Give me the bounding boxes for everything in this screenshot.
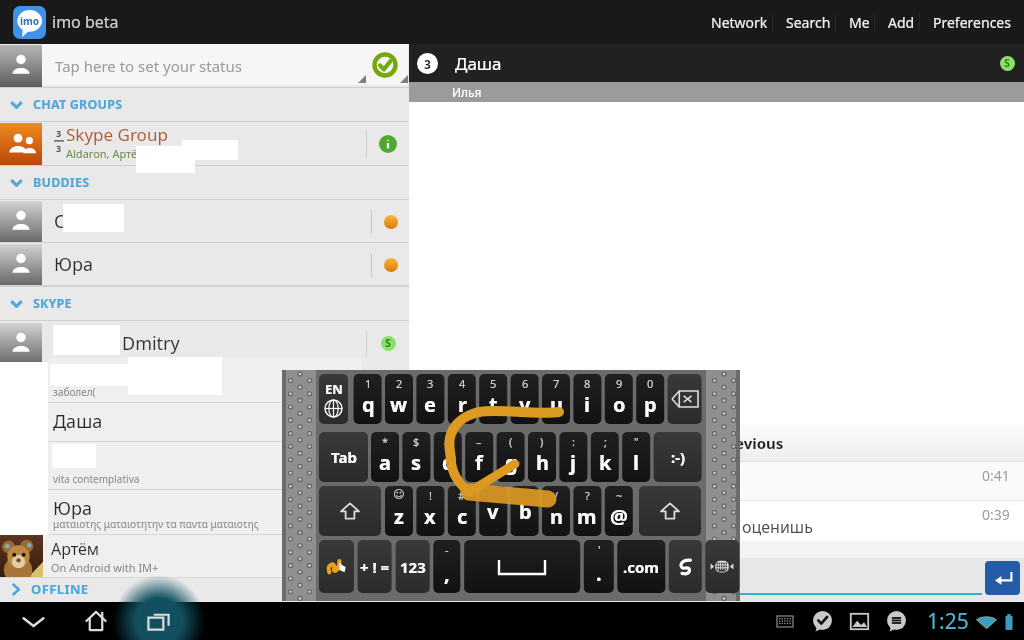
- button[interactable]: w: [385, 374, 413, 424]
- button[interactable]: m: [573, 486, 601, 536]
- button[interactable]: Search: [777, 0, 840, 44]
- staticText: Dmitry: [122, 331, 180, 356]
- button[interactable]: n: [542, 486, 570, 536]
- staticText: -: [445, 542, 449, 557]
- button[interactable]: u: [542, 374, 570, 424]
- staticText: e: [424, 391, 436, 418]
- button[interactable]: imo: [13, 6, 46, 39]
- button[interactable]: + ! =: [358, 540, 392, 593]
- staticText: :-): [671, 447, 686, 467]
- button[interactable]: i: [573, 374, 601, 424]
- button[interactable]: key: [319, 540, 354, 593]
- staticText: 123: [400, 557, 426, 577]
- button[interactable]: key: [705, 540, 739, 593]
- button[interactable]: z: [385, 486, 413, 536]
- button[interactable]: OFFLINE: [0, 576, 409, 602]
- button[interactable]: 3: [409, 44, 1024, 82]
- button[interactable]: .: [584, 540, 614, 593]
- button[interactable]: key: [639, 486, 701, 536]
- staticText: y: [519, 391, 531, 418]
- button[interactable]: a: [371, 432, 399, 482]
- button[interactable]: key: [319, 486, 381, 536]
- button[interactable]: p: [636, 374, 664, 424]
- button[interactable]: l: [622, 432, 650, 482]
- staticText: /: [554, 488, 559, 503]
- staticText: Даша: [455, 52, 502, 75]
- button[interactable]: h: [528, 432, 556, 482]
- staticText: ,: [444, 560, 450, 587]
- button[interactable]: Back: [8, 602, 58, 640]
- button[interactable]: o: [605, 374, 633, 424]
- button[interactable]: Me: [840, 0, 879, 44]
- button[interactable]: f: [465, 432, 493, 482]
- button[interactable]: Артём: [0, 535, 362, 578]
- button[interactable]: BUDDIES: [0, 166, 409, 199]
- button[interactable]: ,: [433, 540, 460, 593]
- staticText: CHAT GROUPS: [33, 96, 123, 113]
- button[interactable]: SKYPE: [0, 287, 409, 320]
- staticText: 8: [584, 376, 591, 391]
- button[interactable]: c: [448, 486, 476, 536]
- button[interactable]: Preferences: [924, 0, 1020, 44]
- button[interactable]: Add: [879, 0, 924, 44]
- button[interactable]: Load previous: [409, 424, 1024, 461]
- staticText: d: [442, 449, 455, 476]
- button[interactable]: 0:39: [409, 501, 1024, 541]
- staticText: imo beta: [52, 11, 119, 33]
- button[interactable]: e: [416, 374, 444, 424]
- staticText: vita contemplativa: [53, 472, 140, 486]
- button[interactable]: @: [605, 486, 633, 536]
- button[interactable]: 123: [396, 540, 430, 593]
- staticText: x: [424, 503, 436, 530]
- button[interactable]: d: [434, 432, 462, 482]
- staticText: a: [379, 449, 391, 476]
- staticText: p: [644, 391, 657, 418]
- button[interactable]: Tap here to set your status: [0, 44, 409, 87]
- button[interactable]: Юра: [0, 243, 409, 286]
- staticText: Илья: [452, 84, 482, 100]
- button[interactable]: Network: [702, 0, 777, 44]
- button[interactable]: С: [0, 200, 409, 243]
- button[interactable]: vita contemplativa: [48, 442, 362, 490]
- button[interactable]: Даша: [48, 403, 362, 442]
- button[interactable]: 0:41: [409, 462, 1024, 500]
- staticText: r: [458, 391, 467, 418]
- button[interactable]: q: [354, 374, 382, 424]
- staticText: (: [509, 434, 513, 449]
- button[interactable]: 3: [0, 122, 409, 165]
- staticText: u: [550, 391, 563, 418]
- staticText: ': [598, 542, 601, 557]
- button[interactable]: Tab: [319, 432, 368, 482]
- staticText: 3: [424, 56, 431, 72]
- button[interactable]: key: [464, 540, 580, 593]
- button[interactable]: Skype: [1000, 56, 1015, 71]
- button[interactable]: :-): [654, 432, 702, 482]
- button[interactable]: Recent apps: [134, 602, 184, 640]
- button[interactable]: x: [416, 486, 444, 536]
- button[interactable]: r: [448, 374, 476, 424]
- button[interactable]: CHAT GROUPS: [0, 88, 409, 121]
- staticText: 2: [396, 376, 403, 391]
- button[interactable]: Home: [71, 602, 121, 640]
- button[interactable]: k: [591, 432, 619, 482]
- button[interactable]: .com: [617, 540, 665, 593]
- button[interactable]: t: [479, 374, 507, 424]
- staticText: 3: [56, 142, 62, 154]
- button[interactable]: g: [497, 432, 525, 482]
- button[interactable]: v: [479, 486, 507, 536]
- button[interactable]: Send: [985, 561, 1020, 595]
- button[interactable]: EN: [319, 374, 348, 424]
- staticText: Add: [888, 13, 915, 32]
- button[interactable]: j: [559, 432, 587, 482]
- button[interactable]: key: [668, 374, 702, 424]
- staticText: ματαιοτης ματαιοτητην τα παντα ματαιοτης: [53, 517, 259, 531]
- button[interactable]: b: [511, 486, 539, 536]
- staticText: #: [458, 488, 466, 503]
- button[interactable]: key: [669, 540, 702, 593]
- staticText: Load previous: [679, 433, 784, 453]
- button[interactable]: Dmitry: [0, 321, 409, 366]
- button[interactable]: Юра: [48, 490, 362, 535]
- button[interactable]: заболел(: [48, 358, 362, 403]
- button[interactable]: s: [402, 432, 430, 482]
- button[interactable]: y: [511, 374, 539, 424]
